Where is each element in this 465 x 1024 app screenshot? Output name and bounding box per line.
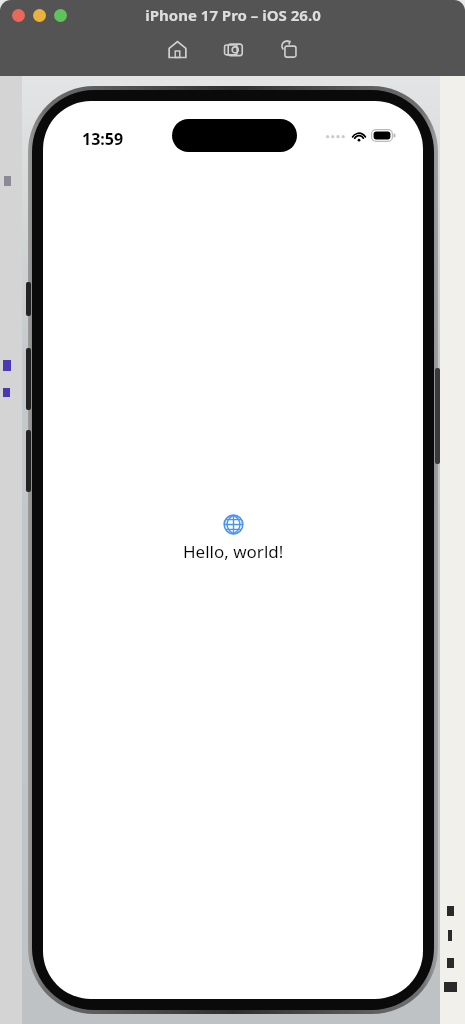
button[interactable]: Rotate [274,34,304,64]
staticText: iPhone 17 Pro – iOS 26.0 [145,5,321,25]
staticText: 13:59 [82,128,124,150]
staticText: Hello, world! [183,540,284,563]
button[interactable]: Home [162,34,192,64]
button[interactable]: Minimise [33,9,46,22]
button[interactable]: Zoom [54,9,67,22]
button[interactable]: Screenshot [218,34,248,64]
button[interactable]: Close [12,9,25,22]
